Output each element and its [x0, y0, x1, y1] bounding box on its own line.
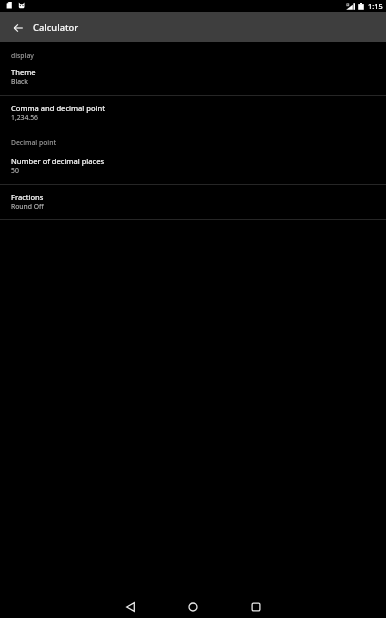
button[interactable]: Home [172, 595, 214, 618]
button[interactable]: Navigate up [0, 12, 30, 42]
staticText: Round Off [11, 202, 44, 211]
staticText: Comma and decimal point [11, 103, 105, 113]
staticText: Number of decimal places [11, 156, 105, 166]
button[interactable]: Recent apps [235, 595, 277, 618]
button[interactable]: Comma and decimal point [0, 103, 386, 122]
staticText: 1:15 [368, 1, 383, 11]
button[interactable]: Theme [0, 67, 386, 86]
staticText: Black [11, 77, 28, 86]
button[interactable]: Back [109, 595, 151, 618]
staticText: 50 [11, 166, 19, 175]
button[interactable]: Number of decimal places [0, 156, 386, 175]
staticText: Decimal point [11, 138, 57, 147]
button[interactable]: Fractions [0, 192, 386, 211]
staticText: 1,234.56 [11, 113, 38, 122]
staticText: Calculator [33, 21, 79, 34]
staticText: display [11, 51, 34, 60]
staticText: Fractions [11, 192, 44, 202]
staticText: Theme [11, 67, 36, 77]
